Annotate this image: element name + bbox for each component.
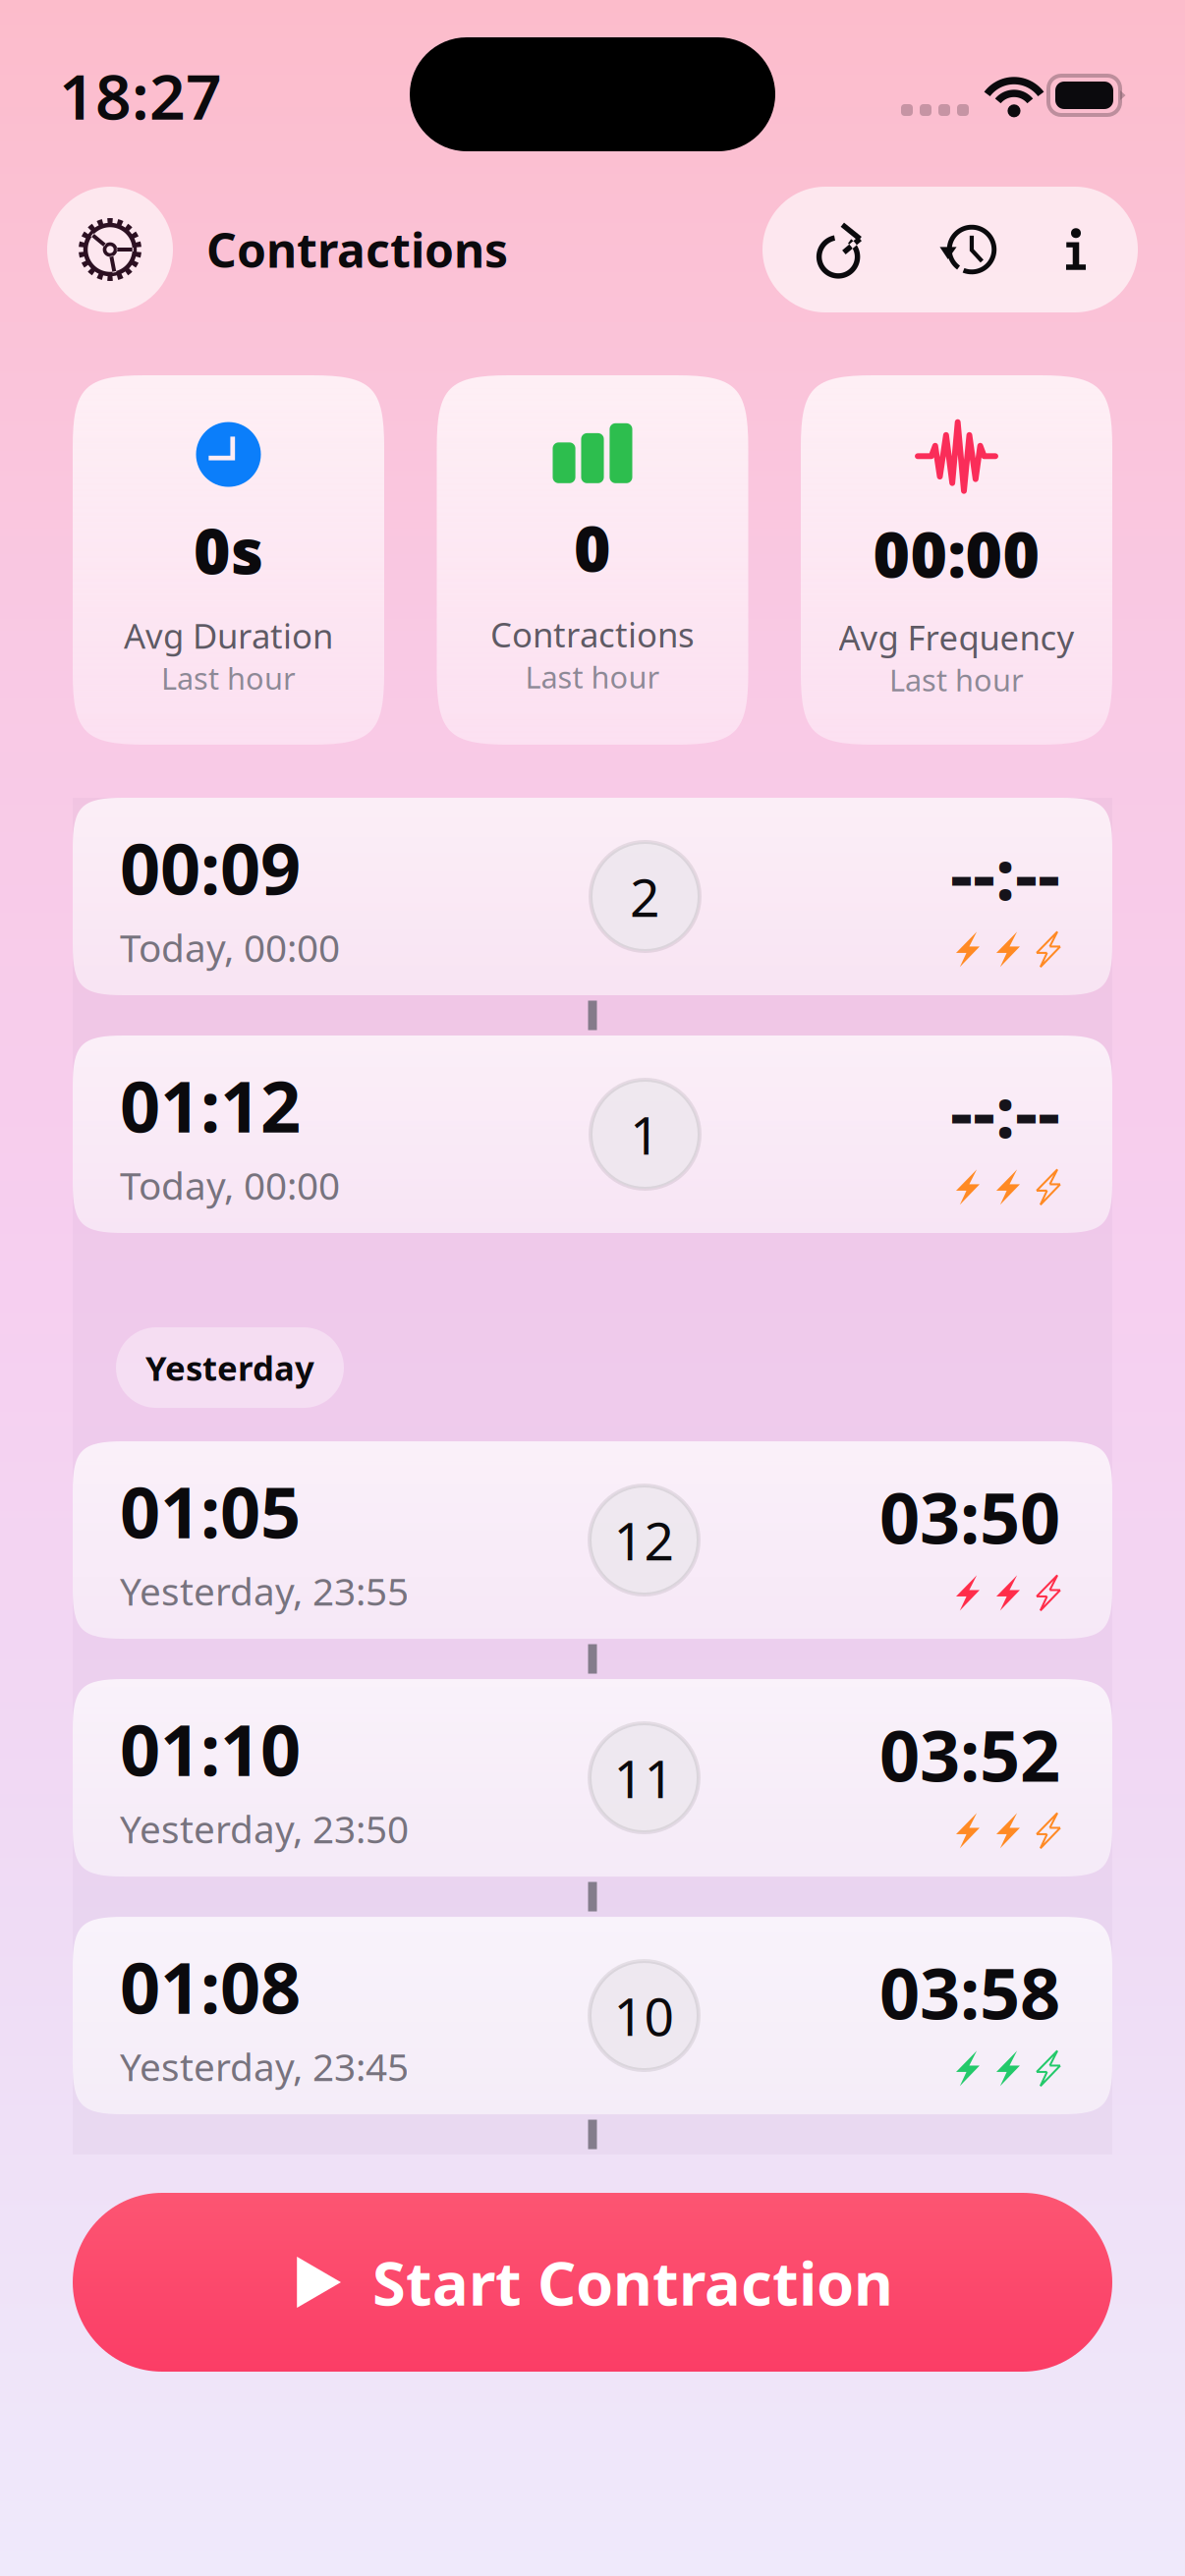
staticText: 01:05 (120, 1464, 301, 1558)
button[interactable]: Settings (47, 187, 173, 312)
button[interactable]: Start Contraction (73, 2193, 1112, 2372)
staticText: Today, 00:00 (120, 922, 340, 973)
staticText: 00:00 (873, 511, 1040, 595)
staticText: Contractions (206, 218, 508, 281)
button[interactable]: 01:10 (73, 1679, 1112, 1876)
button[interactable]: History (922, 187, 1012, 312)
staticText: 01:12 (120, 1058, 301, 1152)
staticText: 00:09 (120, 820, 301, 914)
staticText: 12 (614, 1505, 675, 1575)
button[interactable]: 01:12 (73, 1036, 1112, 1233)
staticText: Start Contraction (372, 2242, 893, 2322)
staticText: 01:10 (120, 1702, 301, 1796)
staticText: Last hour (525, 657, 660, 697)
button[interactable]: Info (1047, 187, 1104, 312)
staticText: 0 (574, 506, 611, 589)
button[interactable]: 00:09 (73, 798, 1112, 995)
staticText: Contractions (490, 611, 695, 657)
staticText: Yesterday, 23:45 (120, 2041, 409, 2092)
staticText: Last hour (161, 658, 296, 698)
staticText: --:-- (950, 826, 1060, 920)
staticText: 03:58 (879, 1945, 1060, 2039)
staticText: 01:08 (120, 1939, 301, 2033)
staticText: Yesterday (145, 1345, 314, 1390)
staticText: 11 (614, 1743, 675, 1813)
staticText: 18:27 (59, 54, 222, 137)
staticText: Avg Frequency (839, 614, 1074, 660)
staticText: 0s (194, 508, 263, 592)
button[interactable]: 01:08 (73, 1917, 1112, 2114)
staticText: 1 (630, 1099, 660, 1169)
staticText: 03:50 (879, 1469, 1060, 1563)
button[interactable]: 01:05 (73, 1441, 1112, 1639)
staticText: Yesterday, 23:55 (120, 1566, 409, 1616)
staticText: Today, 00:00 (120, 1160, 340, 1210)
staticText: Avg Duration (124, 613, 333, 658)
staticText: --:-- (950, 1064, 1060, 1158)
staticText: Last hour (889, 660, 1024, 700)
staticText: 10 (614, 1981, 675, 2050)
staticText: Yesterday, 23:50 (120, 1803, 409, 1854)
staticText: 03:52 (879, 1707, 1060, 1801)
staticText: 2 (630, 862, 660, 931)
button[interactable]: Reset (796, 187, 886, 312)
